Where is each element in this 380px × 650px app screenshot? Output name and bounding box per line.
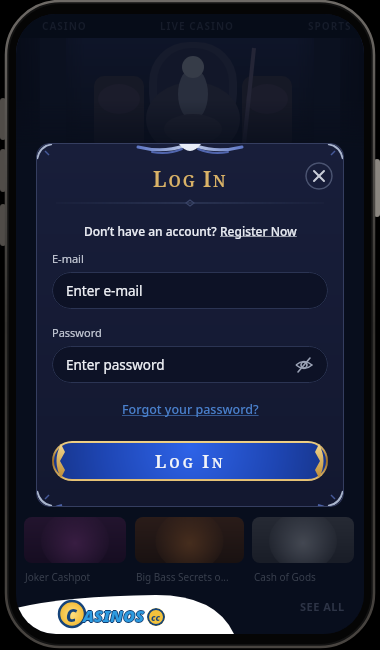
staticText: LOG IN <box>155 449 226 473</box>
staticText: cc <box>151 611 161 623</box>
staticText: Don’t have an account? <box>84 223 220 239</box>
button[interactable]: Enter password <box>52 346 328 383</box>
button[interactable]: SEE ALL <box>300 599 345 614</box>
button[interactable] <box>252 517 354 563</box>
button[interactable] <box>135 517 244 563</box>
staticText: ASINOS <box>83 605 145 627</box>
staticText: Joker Cashpot <box>25 570 91 584</box>
button[interactable]: Enter e-mail <box>52 272 328 309</box>
button[interactable]: LIVE CASINO <box>160 19 234 33</box>
staticText: Enter password <box>66 356 165 374</box>
button[interactable] <box>305 162 333 190</box>
staticText: Password <box>52 325 102 340</box>
staticText: ASINOS <box>82 605 144 627</box>
staticText: Cash of Gods <box>254 570 316 584</box>
staticText: Enter e-mail <box>66 282 143 300</box>
staticText: Register Now <box>220 223 297 239</box>
button[interactable]: ASINOS <box>16 592 256 634</box>
staticText: LOG IN <box>153 165 228 194</box>
button[interactable]: Don’t have an account? <box>84 223 297 239</box>
staticText: ASINOS <box>84 605 146 627</box>
button[interactable]: CASINO <box>42 19 87 33</box>
button[interactable]: SPORTS <box>308 19 352 33</box>
button[interactable]: Forgot your password? <box>122 401 259 418</box>
staticText: ASINOS <box>83 604 145 626</box>
button[interactable]: LOG IN <box>52 441 328 481</box>
staticText: C <box>66 604 77 627</box>
staticText: E-mail <box>52 251 84 266</box>
staticText: ASINOS <box>83 606 145 628</box>
staticText: Big Bass Secrets o... <box>136 570 229 584</box>
button[interactable] <box>24 517 126 563</box>
